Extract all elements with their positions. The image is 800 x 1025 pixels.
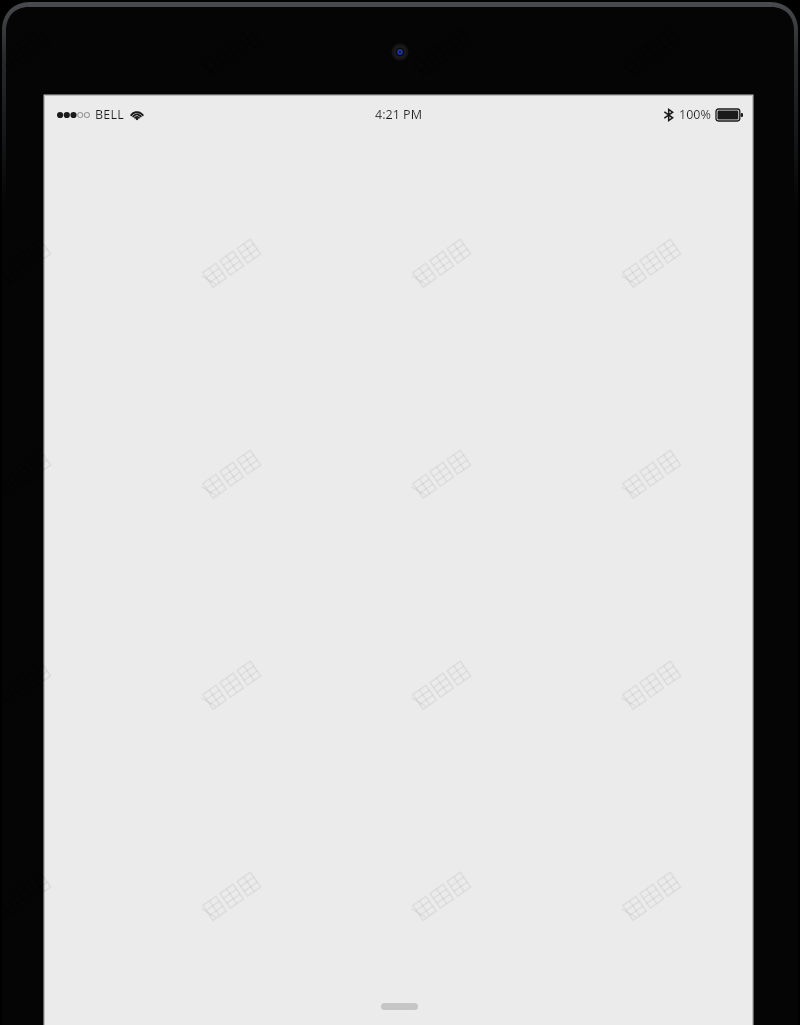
staticText: BELL — [95, 106, 124, 123]
button[interactable]: Home indicator — [381, 1003, 418, 1010]
other: Battery full — [716, 109, 743, 121]
button[interactable]: 4:21 PM — [375, 106, 422, 123]
other: Bluetooth — [664, 108, 673, 122]
other: Cellular signal — [57, 109, 90, 121]
staticText: 100% — [679, 106, 711, 123]
other: Wi-Fi — [130, 108, 144, 122]
button[interactable]: Cellular signal — [57, 106, 144, 123]
button[interactable]: Bluetooth — [664, 106, 743, 123]
staticText: 4:21 PM — [375, 106, 422, 123]
